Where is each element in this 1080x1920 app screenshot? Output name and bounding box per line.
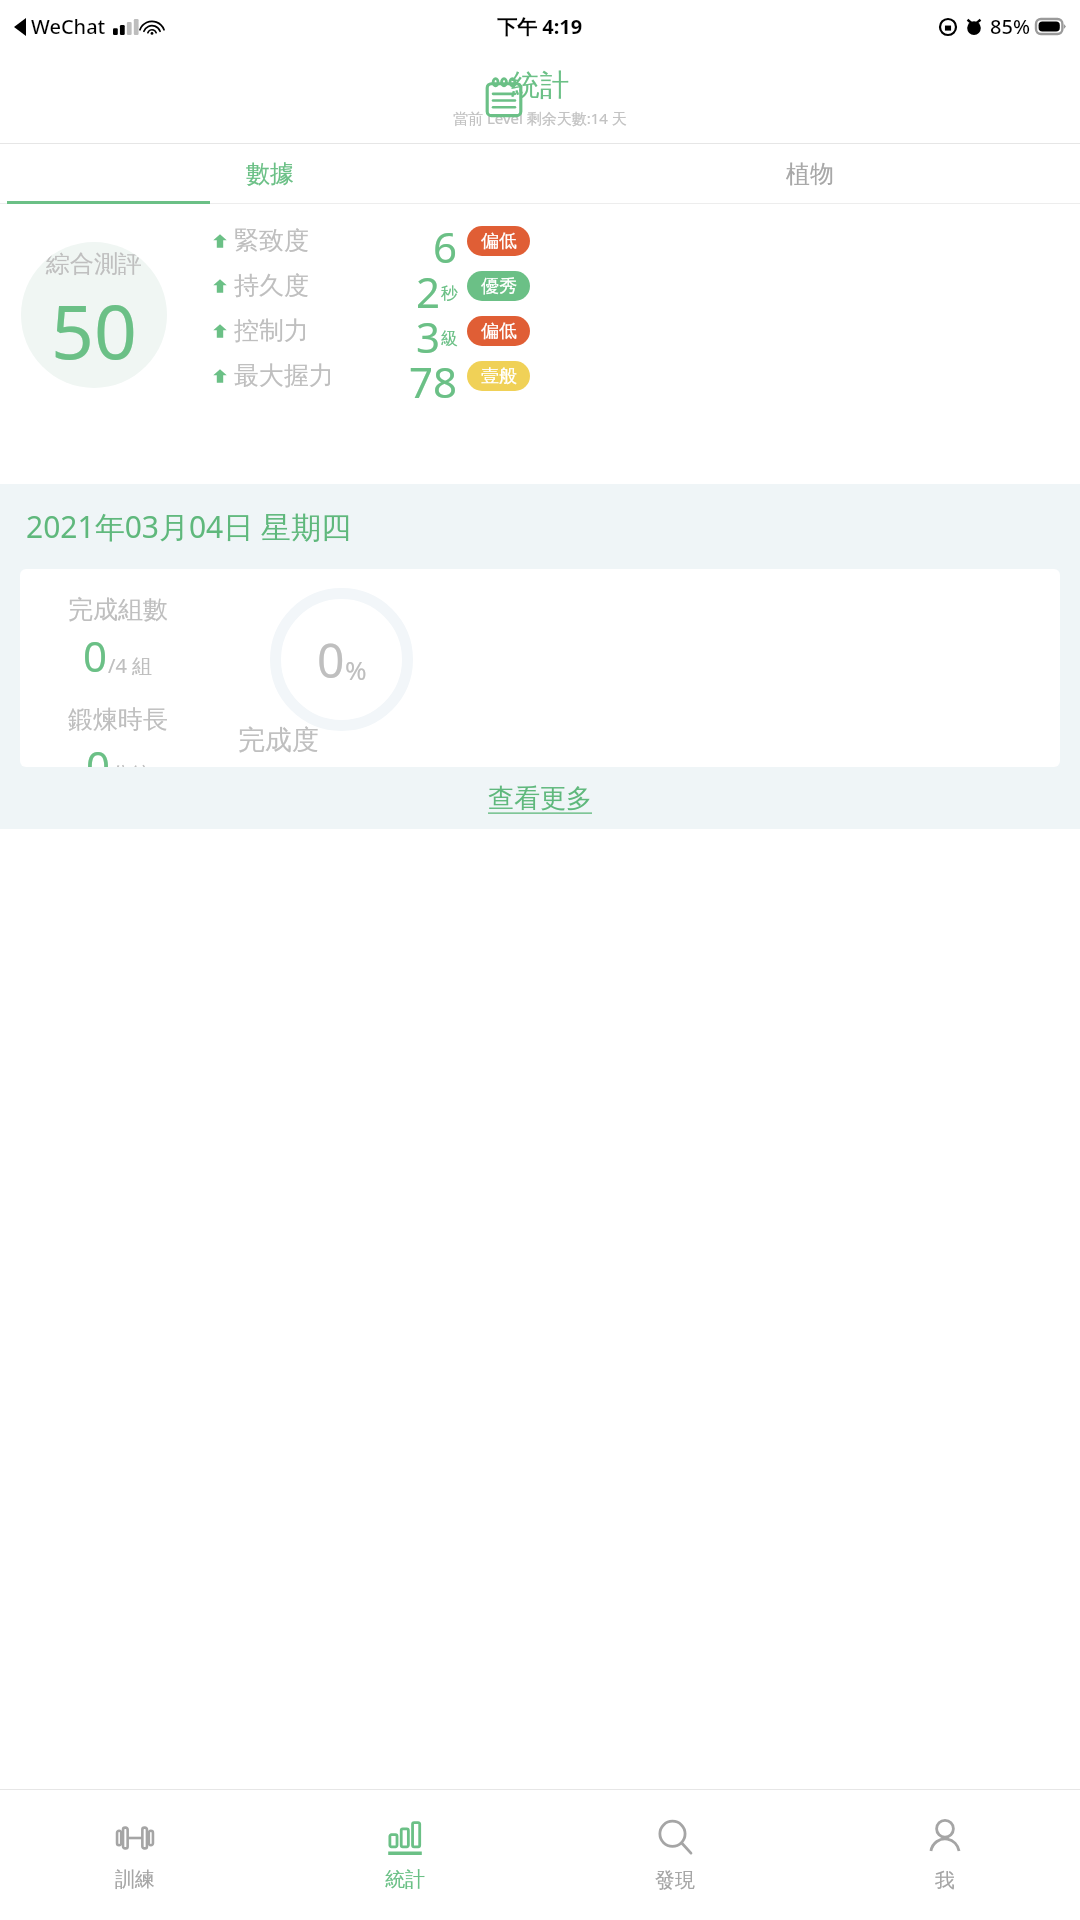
staticText: 優秀 bbox=[481, 275, 517, 298]
staticText: 持久度 bbox=[234, 270, 309, 301]
staticText: 0 bbox=[86, 737, 111, 767]
staticText: 78 bbox=[409, 353, 458, 398]
staticText: 控制力 bbox=[234, 315, 309, 346]
button[interactable]: 查看更多 bbox=[0, 767, 1080, 829]
button[interactable]: 最大握力 bbox=[212, 353, 530, 398]
staticText: 數據 bbox=[246, 159, 294, 189]
button[interactable]: 緊致度 bbox=[212, 218, 530, 263]
staticText: 完成組數 bbox=[68, 594, 168, 625]
button[interactable]: 持久度 bbox=[212, 263, 530, 308]
button[interactable]: 我 bbox=[810, 1790, 1080, 1920]
staticText: 6 bbox=[433, 218, 458, 263]
staticText: 訓練 bbox=[115, 1867, 155, 1892]
button[interactable]: 統計 bbox=[270, 1790, 540, 1920]
staticText: 統計 bbox=[511, 67, 569, 104]
staticText: 0 bbox=[83, 627, 108, 684]
button[interactable]: 完成組數 bbox=[20, 569, 1060, 767]
staticText: 查看更多 bbox=[488, 782, 592, 815]
button[interactable]: 控制力 bbox=[212, 308, 530, 353]
staticText: 50 bbox=[51, 279, 137, 381]
button[interactable]: 優秀 bbox=[467, 271, 530, 301]
button[interactable]: 偏低 bbox=[467, 316, 530, 346]
staticText: 鍛煉時長 bbox=[68, 704, 168, 735]
button[interactable]: 壹般 bbox=[467, 361, 530, 391]
staticText: 統計 bbox=[385, 1867, 425, 1892]
staticText: 85% bbox=[990, 13, 1030, 40]
staticText: 發現 bbox=[655, 1868, 695, 1893]
staticText: 壹般 bbox=[481, 365, 517, 388]
staticText: 偏低 bbox=[481, 230, 517, 253]
staticText: 最大握力 bbox=[234, 360, 334, 391]
staticText: WeChat bbox=[31, 13, 106, 40]
staticText: 當前 Level 剩余天數:14 天 bbox=[453, 108, 627, 128]
staticText: 秒 bbox=[441, 283, 458, 304]
staticText: 偏低 bbox=[481, 320, 517, 343]
button[interactable]: Notebook bbox=[478, 72, 530, 124]
staticText: 3 bbox=[416, 308, 441, 353]
staticText: 級 bbox=[441, 328, 458, 349]
staticText: % bbox=[345, 652, 367, 687]
button[interactable]: 訓練 bbox=[0, 1790, 270, 1920]
staticText: 2021年03月04日 星期四 bbox=[26, 506, 352, 547]
staticText: 緊致度 bbox=[234, 225, 309, 256]
staticText: 2 bbox=[416, 263, 441, 308]
button[interactable]: 偏低 bbox=[467, 226, 530, 256]
staticText: 我 bbox=[935, 1868, 955, 1893]
staticText: 0 bbox=[317, 627, 345, 692]
staticText: 綜合測評 bbox=[46, 249, 142, 279]
button[interactable]: 植物 bbox=[540, 144, 1080, 204]
button[interactable]: 數據 bbox=[0, 144, 540, 204]
staticText: /4 組 bbox=[108, 652, 153, 679]
staticText: 分鐘 bbox=[111, 762, 151, 767]
staticText: 完成度 bbox=[238, 723, 319, 757]
button[interactable]: 發現 bbox=[540, 1790, 810, 1920]
staticText: 下午 4:19 bbox=[497, 13, 583, 40]
staticText: 植物 bbox=[786, 159, 834, 189]
